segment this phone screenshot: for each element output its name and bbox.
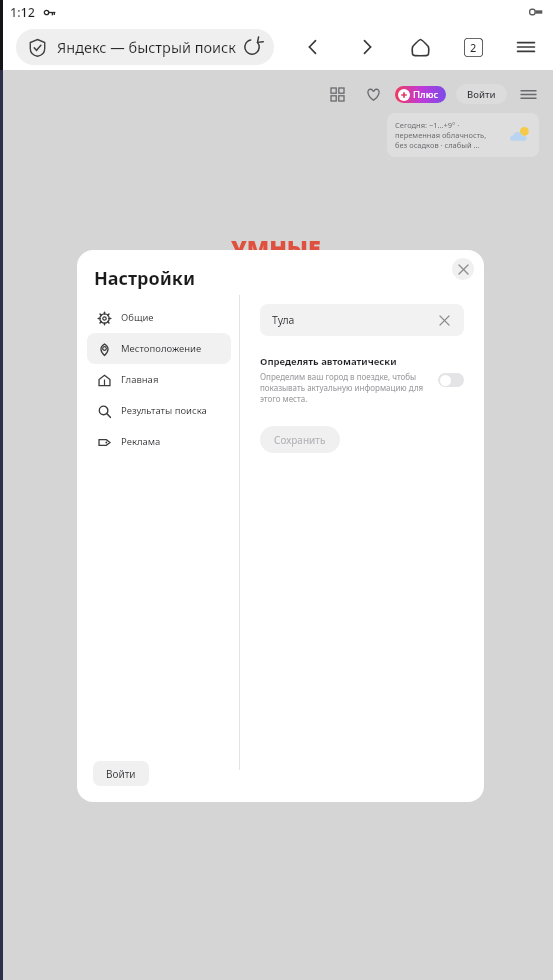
button[interactable]: Menu bbox=[511, 32, 541, 62]
staticText: Плюс bbox=[413, 88, 439, 101]
staticText: Тула bbox=[272, 313, 436, 327]
button[interactable]: Back bbox=[298, 32, 328, 62]
staticText: Яндекс — быстрый поиск bbox=[57, 37, 238, 57]
button[interactable]: Плюс bbox=[395, 86, 446, 103]
button[interactable]: Site menu bbox=[517, 83, 539, 105]
staticText: Реклама bbox=[121, 435, 161, 448]
staticText: Главная bbox=[121, 373, 159, 386]
button[interactable]: Общие bbox=[87, 302, 231, 333]
staticText: Местоположение bbox=[121, 342, 202, 355]
staticText: Войти bbox=[467, 88, 496, 101]
button[interactable]: Apps bbox=[325, 82, 349, 106]
staticText: Определять автоматически bbox=[260, 355, 397, 368]
staticText: переменная облачность, bbox=[395, 130, 487, 140]
button[interactable]: Reload bbox=[242, 37, 262, 57]
staticText: без осадков · слабый … bbox=[395, 140, 480, 150]
staticText: Результаты поиска bbox=[121, 404, 207, 417]
button[interactable]: Войти bbox=[456, 84, 507, 104]
button[interactable]: Сохранить bbox=[260, 426, 340, 453]
button[interactable]: Главная bbox=[87, 364, 231, 395]
button[interactable]: Местоположение bbox=[87, 333, 231, 364]
button[interactable]: Результаты поиска bbox=[87, 395, 231, 426]
staticText: Войти bbox=[106, 767, 136, 781]
staticText: 1:12 bbox=[10, 4, 35, 21]
staticText: УМНЫЕ bbox=[231, 232, 322, 263]
button[interactable]: Close bbox=[452, 258, 474, 280]
staticText: Сегодня: −1…+9° · bbox=[395, 120, 460, 130]
button[interactable]: Forward bbox=[352, 32, 382, 62]
button[interactable]: Home bbox=[405, 32, 435, 62]
button[interactable]: Реклама bbox=[87, 426, 231, 457]
button[interactable]: Clear bbox=[436, 312, 452, 328]
other: Secure bbox=[28, 38, 47, 57]
button[interactable]: Войти bbox=[93, 761, 149, 786]
staticText: Сохранить bbox=[274, 433, 326, 447]
button[interactable]: Тула bbox=[260, 304, 464, 336]
button[interactable]: Secure bbox=[16, 29, 274, 65]
button[interactable]: Tabs bbox=[458, 32, 488, 62]
staticText: Настройки bbox=[94, 266, 196, 291]
button[interactable]: Favorites bbox=[361, 82, 385, 106]
staticText: Общие bbox=[121, 311, 154, 324]
button[interactable]: Auto detect toggle bbox=[438, 373, 464, 387]
staticText: Определим ваш город в поездке, чтобы пок… bbox=[260, 371, 430, 404]
button[interactable]: Сегодня: −1…+9° · bbox=[387, 113, 539, 157]
staticText: 2 bbox=[470, 40, 477, 55]
